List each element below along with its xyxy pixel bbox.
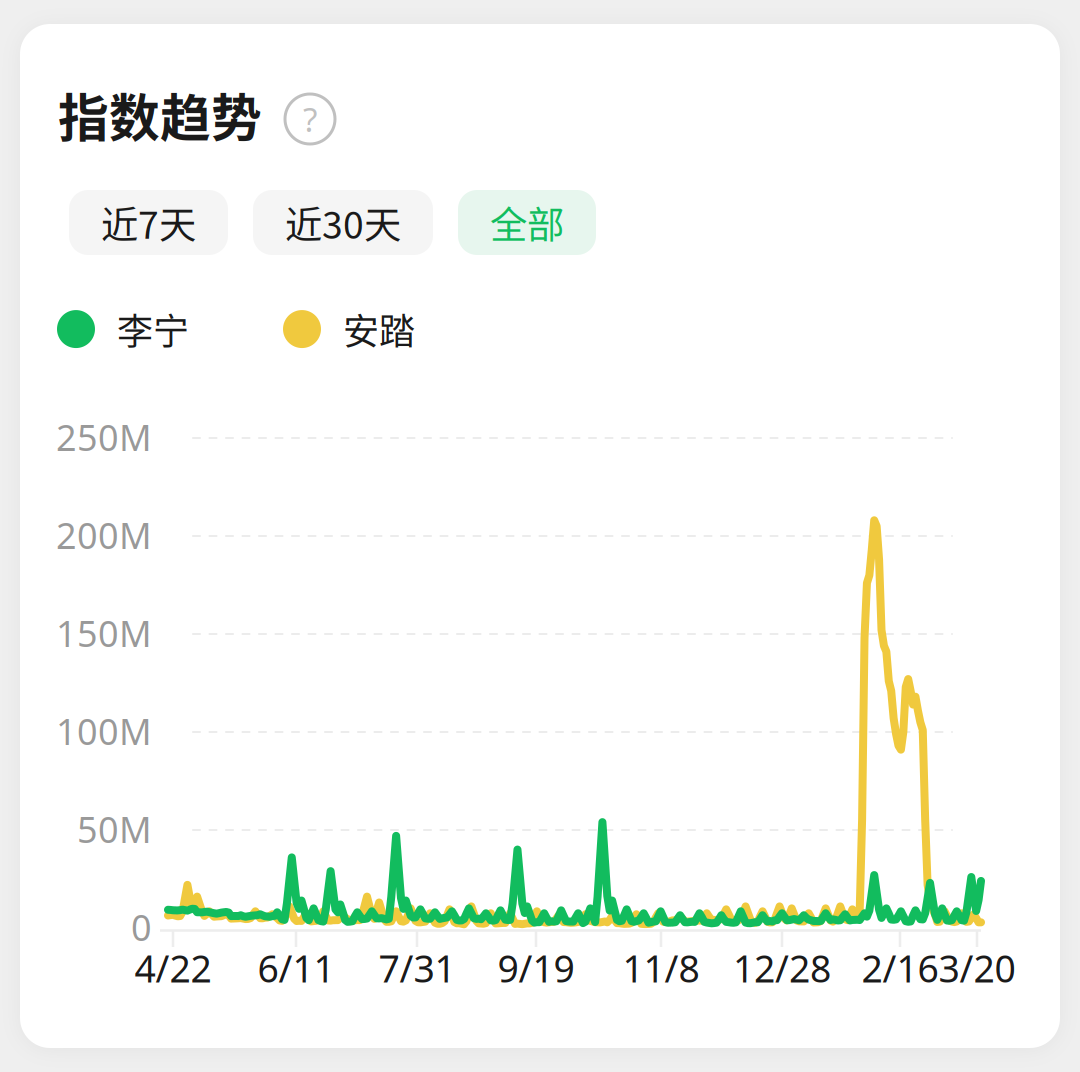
button[interactable]: 近30天 xyxy=(253,190,433,255)
staticText: 12/28 xyxy=(733,943,831,993)
staticText: 250M xyxy=(56,413,152,461)
staticText: 11/8 xyxy=(622,943,699,993)
staticText: 3/20 xyxy=(938,943,1015,993)
button[interactable]: Help xyxy=(285,94,335,144)
button[interactable]: 全部 xyxy=(458,190,596,255)
staticText: 200M xyxy=(56,511,152,559)
staticText: 50M xyxy=(77,805,152,853)
staticText: 安踏 xyxy=(343,303,415,355)
staticText: 6/11 xyxy=(257,943,334,993)
staticText: 全部 xyxy=(490,195,564,250)
staticText: 近7天 xyxy=(101,195,196,250)
staticText: 0 xyxy=(131,903,152,951)
staticText: 100M xyxy=(56,707,152,755)
staticText: 2/16 xyxy=(861,943,938,993)
staticText: 150M xyxy=(56,609,152,657)
staticText: ? xyxy=(303,97,317,141)
staticText: 李宁 xyxy=(117,303,189,355)
staticText: 9/19 xyxy=(497,943,574,993)
staticText: 指数趋势 xyxy=(58,78,262,151)
staticText: 近30天 xyxy=(285,195,401,250)
staticText: 4/22 xyxy=(134,943,211,993)
staticText: 7/31 xyxy=(378,943,455,993)
button[interactable]: 近7天 xyxy=(69,190,228,255)
